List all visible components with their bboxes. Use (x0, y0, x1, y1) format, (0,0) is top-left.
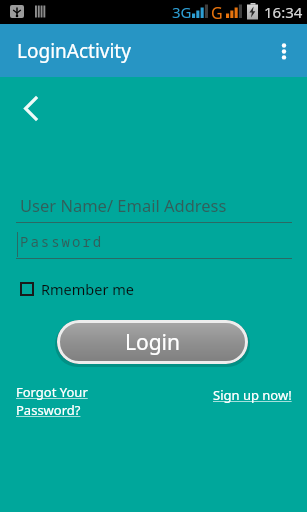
staticText: LoginActivity (17, 38, 131, 64)
staticText: Login (125, 328, 181, 357)
button[interactable]: Sign up now! (213, 386, 292, 404)
staticText: Password (20, 232, 104, 251)
staticText: Forgot Your (16, 383, 88, 401)
button[interactable] (12, 88, 52, 128)
staticText: G (211, 2, 223, 24)
staticText: 16:34 (264, 2, 303, 22)
button[interactable] (271, 24, 307, 77)
staticText: 3G (172, 2, 192, 22)
button[interactable]: Password (0, 226, 307, 260)
button[interactable]: User Name/ Email Address (0, 186, 307, 224)
staticText: Sign up now! (213, 386, 292, 404)
button[interactable]: Forgot Your (16, 383, 88, 419)
staticText: Password? (16, 401, 81, 419)
button[interactable]: Login (57, 320, 248, 364)
button[interactable]: Rmember me (20, 279, 134, 299)
staticText: User Name/ Email Address (20, 194, 227, 216)
staticText: Rmember me (41, 279, 134, 299)
